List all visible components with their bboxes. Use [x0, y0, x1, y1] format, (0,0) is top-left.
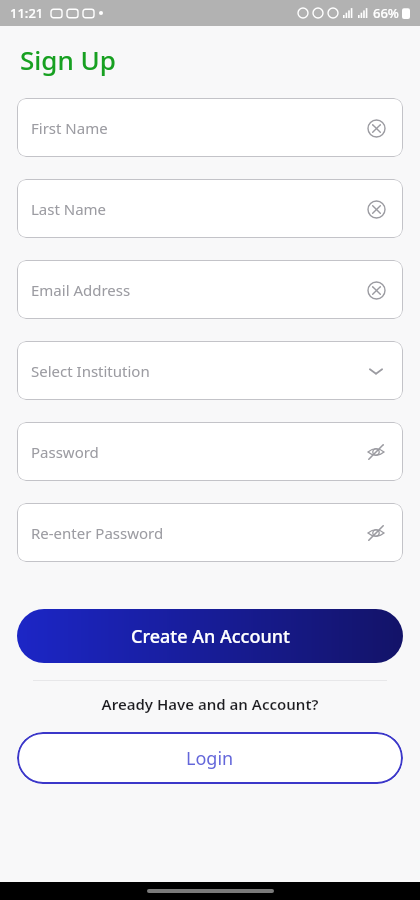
staticText: First Name: [31, 118, 362, 138]
button[interactable]: Create An Account: [17, 609, 403, 663]
button[interactable]: Clear email address: [362, 276, 390, 304]
button[interactable]: Login: [17, 732, 403, 784]
staticText: Password: [31, 442, 362, 462]
button[interactable]: Select Institution: [17, 341, 403, 400]
button[interactable]: Clear last name: [362, 195, 390, 223]
staticText: 66%: [373, 4, 399, 22]
button[interactable]: Last Name: [17, 179, 403, 238]
staticText: Re-enter Password: [31, 523, 362, 543]
button[interactable]: Password: [17, 422, 403, 481]
button[interactable]: First Name: [17, 98, 403, 157]
staticText: Aready Have and an Account?: [0, 694, 420, 714]
staticText: Last Name: [31, 199, 362, 219]
staticText: Sign Up: [20, 42, 116, 77]
button[interactable]: Open institution list: [362, 357, 390, 385]
staticText: Create An Account: [131, 624, 290, 649]
staticText: Select Institution: [31, 361, 362, 381]
staticText: 11:21: [10, 4, 44, 22]
button[interactable]: Re-enter Password: [17, 503, 403, 562]
button[interactable]: Show password: [362, 438, 390, 466]
staticText: Login: [186, 746, 234, 771]
staticText: Email Address: [31, 280, 362, 300]
button[interactable]: Clear first name: [362, 114, 390, 142]
button[interactable]: Show re-entered password: [362, 519, 390, 547]
button[interactable]: Email Address: [17, 260, 403, 319]
